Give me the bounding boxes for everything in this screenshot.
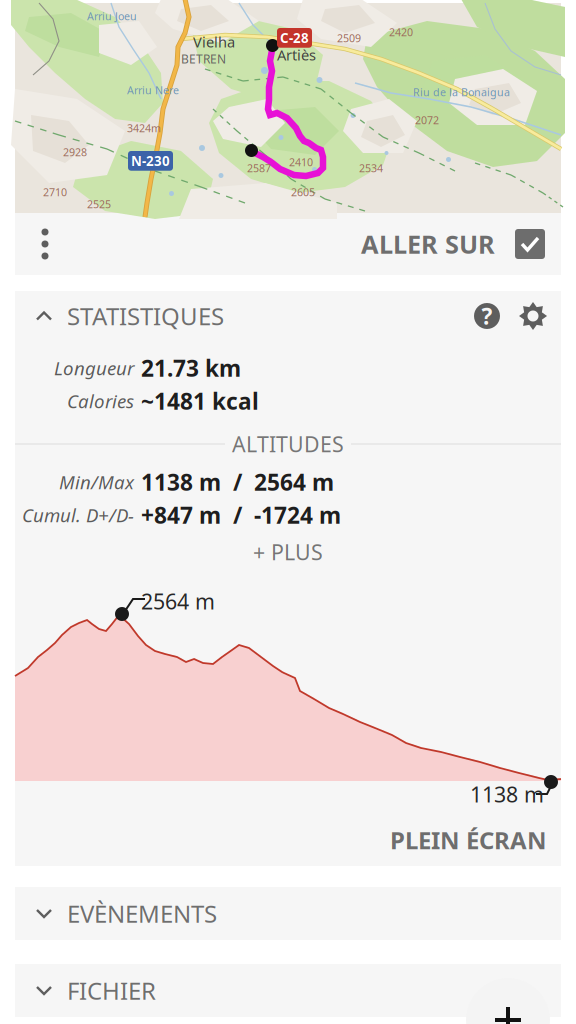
staticText: Longueur: [54, 356, 134, 380]
button[interactable]: Settings: [519, 302, 547, 330]
staticText: Min/Max: [59, 470, 134, 494]
button[interactable]: PLEIN ÉCRAN: [15, 817, 561, 863]
staticText: +847 m / -1724 m: [141, 500, 341, 530]
staticText: Arriu Joeu: [87, 9, 137, 23]
staticText: Riu de la Bonaigua: [413, 85, 510, 99]
staticText: Cumul. D+/D-: [22, 503, 134, 527]
staticText: PLEIN ÉCRAN: [390, 824, 547, 856]
staticText: BETREN: [181, 51, 226, 67]
staticText: 2928: [63, 145, 87, 159]
staticText: Arriu Nere: [127, 83, 179, 97]
staticText: ALTITUDES: [232, 430, 344, 458]
button[interactable]: STATISTIQUES: [15, 291, 345, 341]
staticText: ?: [481, 301, 492, 331]
staticText: 2564 m: [141, 587, 215, 615]
staticText: 2072: [415, 113, 439, 127]
staticText: ~1481 kcal: [141, 386, 259, 416]
staticText: 2420: [389, 25, 413, 39]
staticText: 2534: [359, 161, 383, 175]
button[interactable]: Help: [474, 303, 500, 329]
staticText: N-230: [131, 152, 170, 170]
staticText: 2525: [87, 197, 111, 211]
staticText: 1138 m / 2564 m: [141, 467, 334, 497]
staticText: STATISTIQUES: [67, 300, 224, 332]
staticText: + PLUS: [253, 538, 323, 566]
staticText: 21.73 km: [141, 353, 241, 383]
button[interactable]: More options: [15, 213, 75, 275]
button[interactable]: ALLER SUR: [361, 213, 561, 275]
button[interactable]: EVÈNEMENTS: [15, 887, 561, 940]
staticText: Artiès: [277, 45, 316, 64]
staticText: 2509: [337, 31, 361, 45]
staticText: FICHIER: [67, 975, 156, 1006]
staticText: ALLER SUR: [361, 227, 495, 261]
staticText: 2605: [291, 185, 315, 199]
staticText: EVÈNEMENTS: [67, 898, 217, 929]
button[interactable]: FICHIER: [15, 964, 561, 1017]
button[interactable]: Add: [466, 978, 550, 1024]
staticText: Calories: [67, 389, 134, 413]
button[interactable]: + PLUS: [15, 536, 561, 568]
staticText: 2410: [289, 155, 313, 169]
staticText: 2587: [247, 161, 271, 175]
staticText: 2710: [43, 185, 67, 199]
staticText: C-28: [280, 29, 309, 47]
staticText: 1138 m: [470, 780, 544, 808]
staticText: Vielha: [193, 32, 235, 51]
staticText: 3424m: [127, 121, 161, 135]
